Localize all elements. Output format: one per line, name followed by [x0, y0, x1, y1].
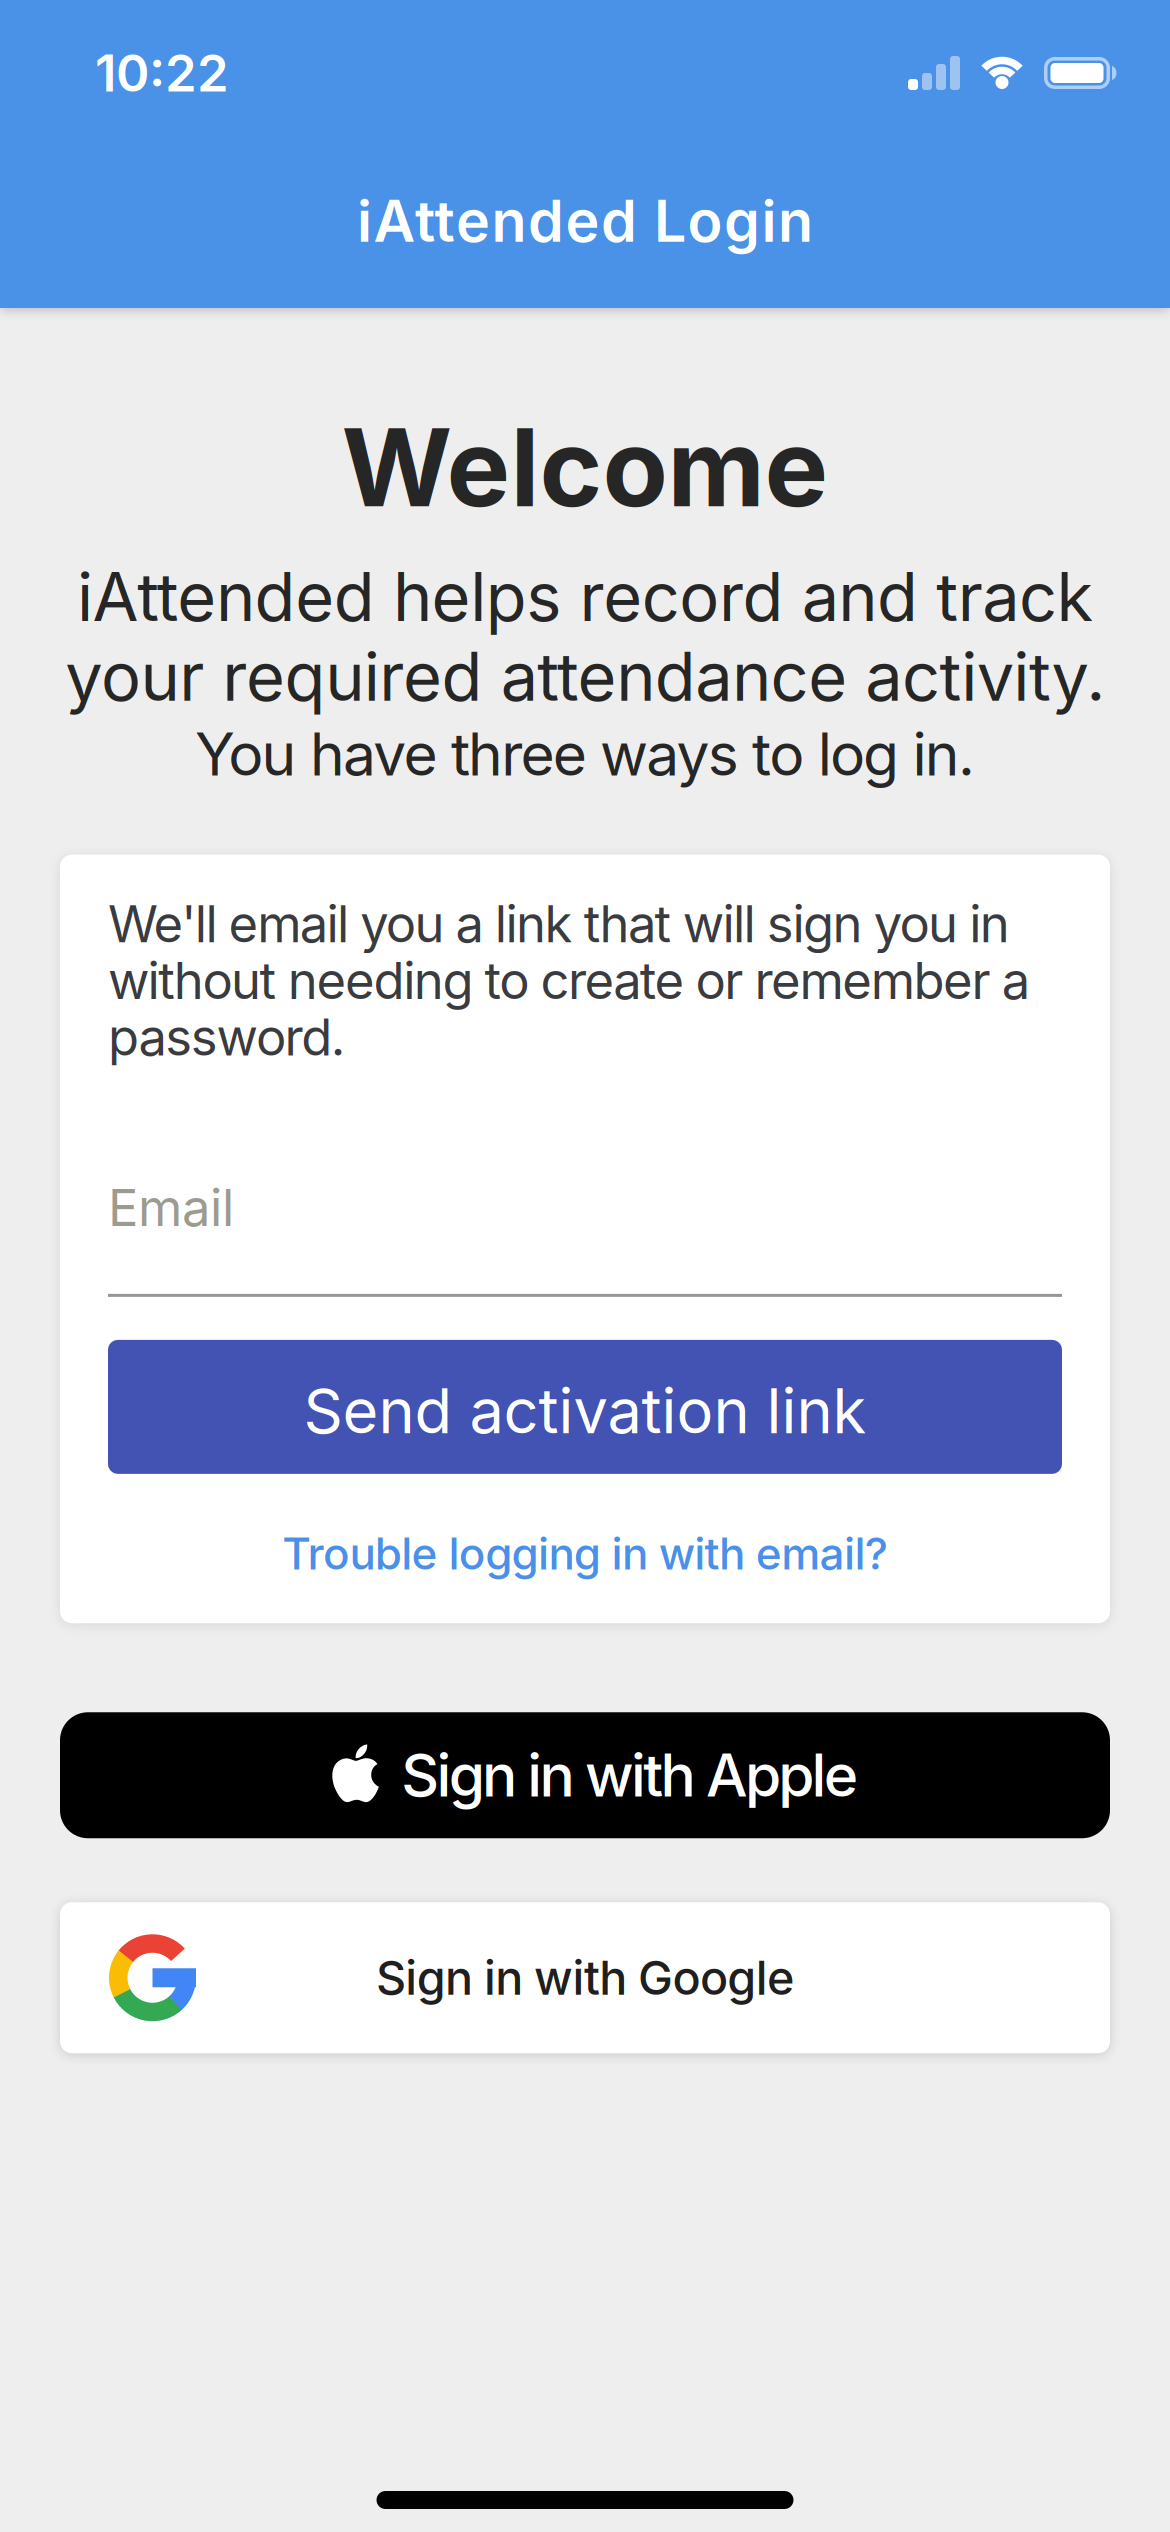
staticText: 10:22: [95, 46, 229, 100]
staticText: Sign in with Google: [376, 1953, 794, 2003]
button[interactable]: Sign in with Apple: [60, 1712, 1110, 1838]
button[interactable]: Sign in with Google: [60, 1902, 1110, 2053]
button[interactable]: Trouble logging in with email?: [108, 1530, 1062, 1577]
staticText: Email: [108, 1180, 234, 1235]
staticText: We'll email you a link that will sign yo…: [108, 897, 1030, 1064]
staticText: Sign in with Apple: [401, 1744, 858, 1807]
staticText: Welcome: [341, 410, 828, 525]
staticText: iAttended Login: [357, 190, 813, 252]
staticText: You have three ways to log in.: [195, 722, 975, 786]
button[interactable]: Send activation link: [108, 1340, 1062, 1474]
staticText: iAttended helps record and track your re…: [65, 561, 1105, 712]
staticText: Send activation link: [303, 1378, 866, 1444]
staticText: Trouble logging in with email?: [282, 1530, 888, 1577]
textField[interactable]: Email: [108, 1180, 1062, 1235]
